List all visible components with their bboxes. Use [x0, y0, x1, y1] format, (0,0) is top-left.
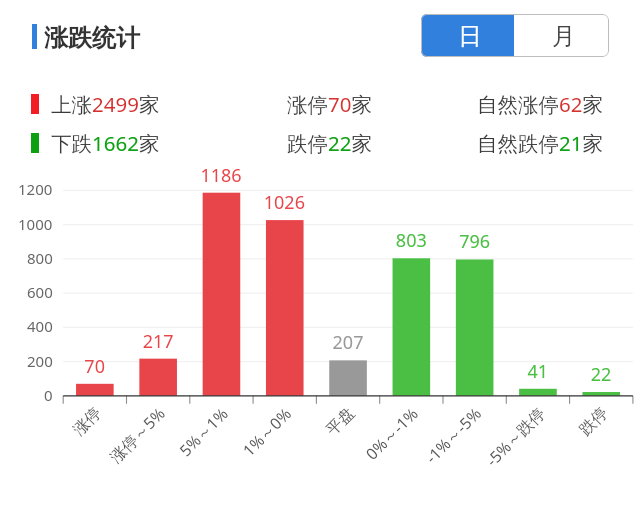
staticText: 自然涨停62家 — [477, 90, 603, 118]
staticText: 月 — [552, 21, 576, 51]
staticText: 跌停22家 — [287, 129, 372, 157]
button[interactable]: 下跌1662家 — [0, 129, 160, 157]
staticText: 涨跌统计 — [44, 23, 140, 53]
button[interactable]: 自然涨停62家 — [477, 90, 603, 118]
staticText: 涨停70家 — [287, 90, 372, 118]
staticText: 上涨2499家 — [51, 90, 160, 118]
button[interactable]: 自然跌停21家 — [477, 129, 603, 157]
button[interactable]: 涨停70家 — [287, 90, 372, 118]
button[interactable]: 跌停22家 — [287, 129, 372, 157]
button[interactable]: 日 — [421, 14, 514, 57]
button[interactable]: 上涨2499家 — [0, 90, 160, 118]
other: 涨跌分布柱状图 — [0, 0, 640, 511]
button[interactable]: 月 — [514, 14, 609, 57]
staticText: 日 — [458, 21, 482, 51]
staticText: 下跌1662家 — [51, 129, 160, 157]
staticText: 自然跌停21家 — [477, 129, 603, 157]
